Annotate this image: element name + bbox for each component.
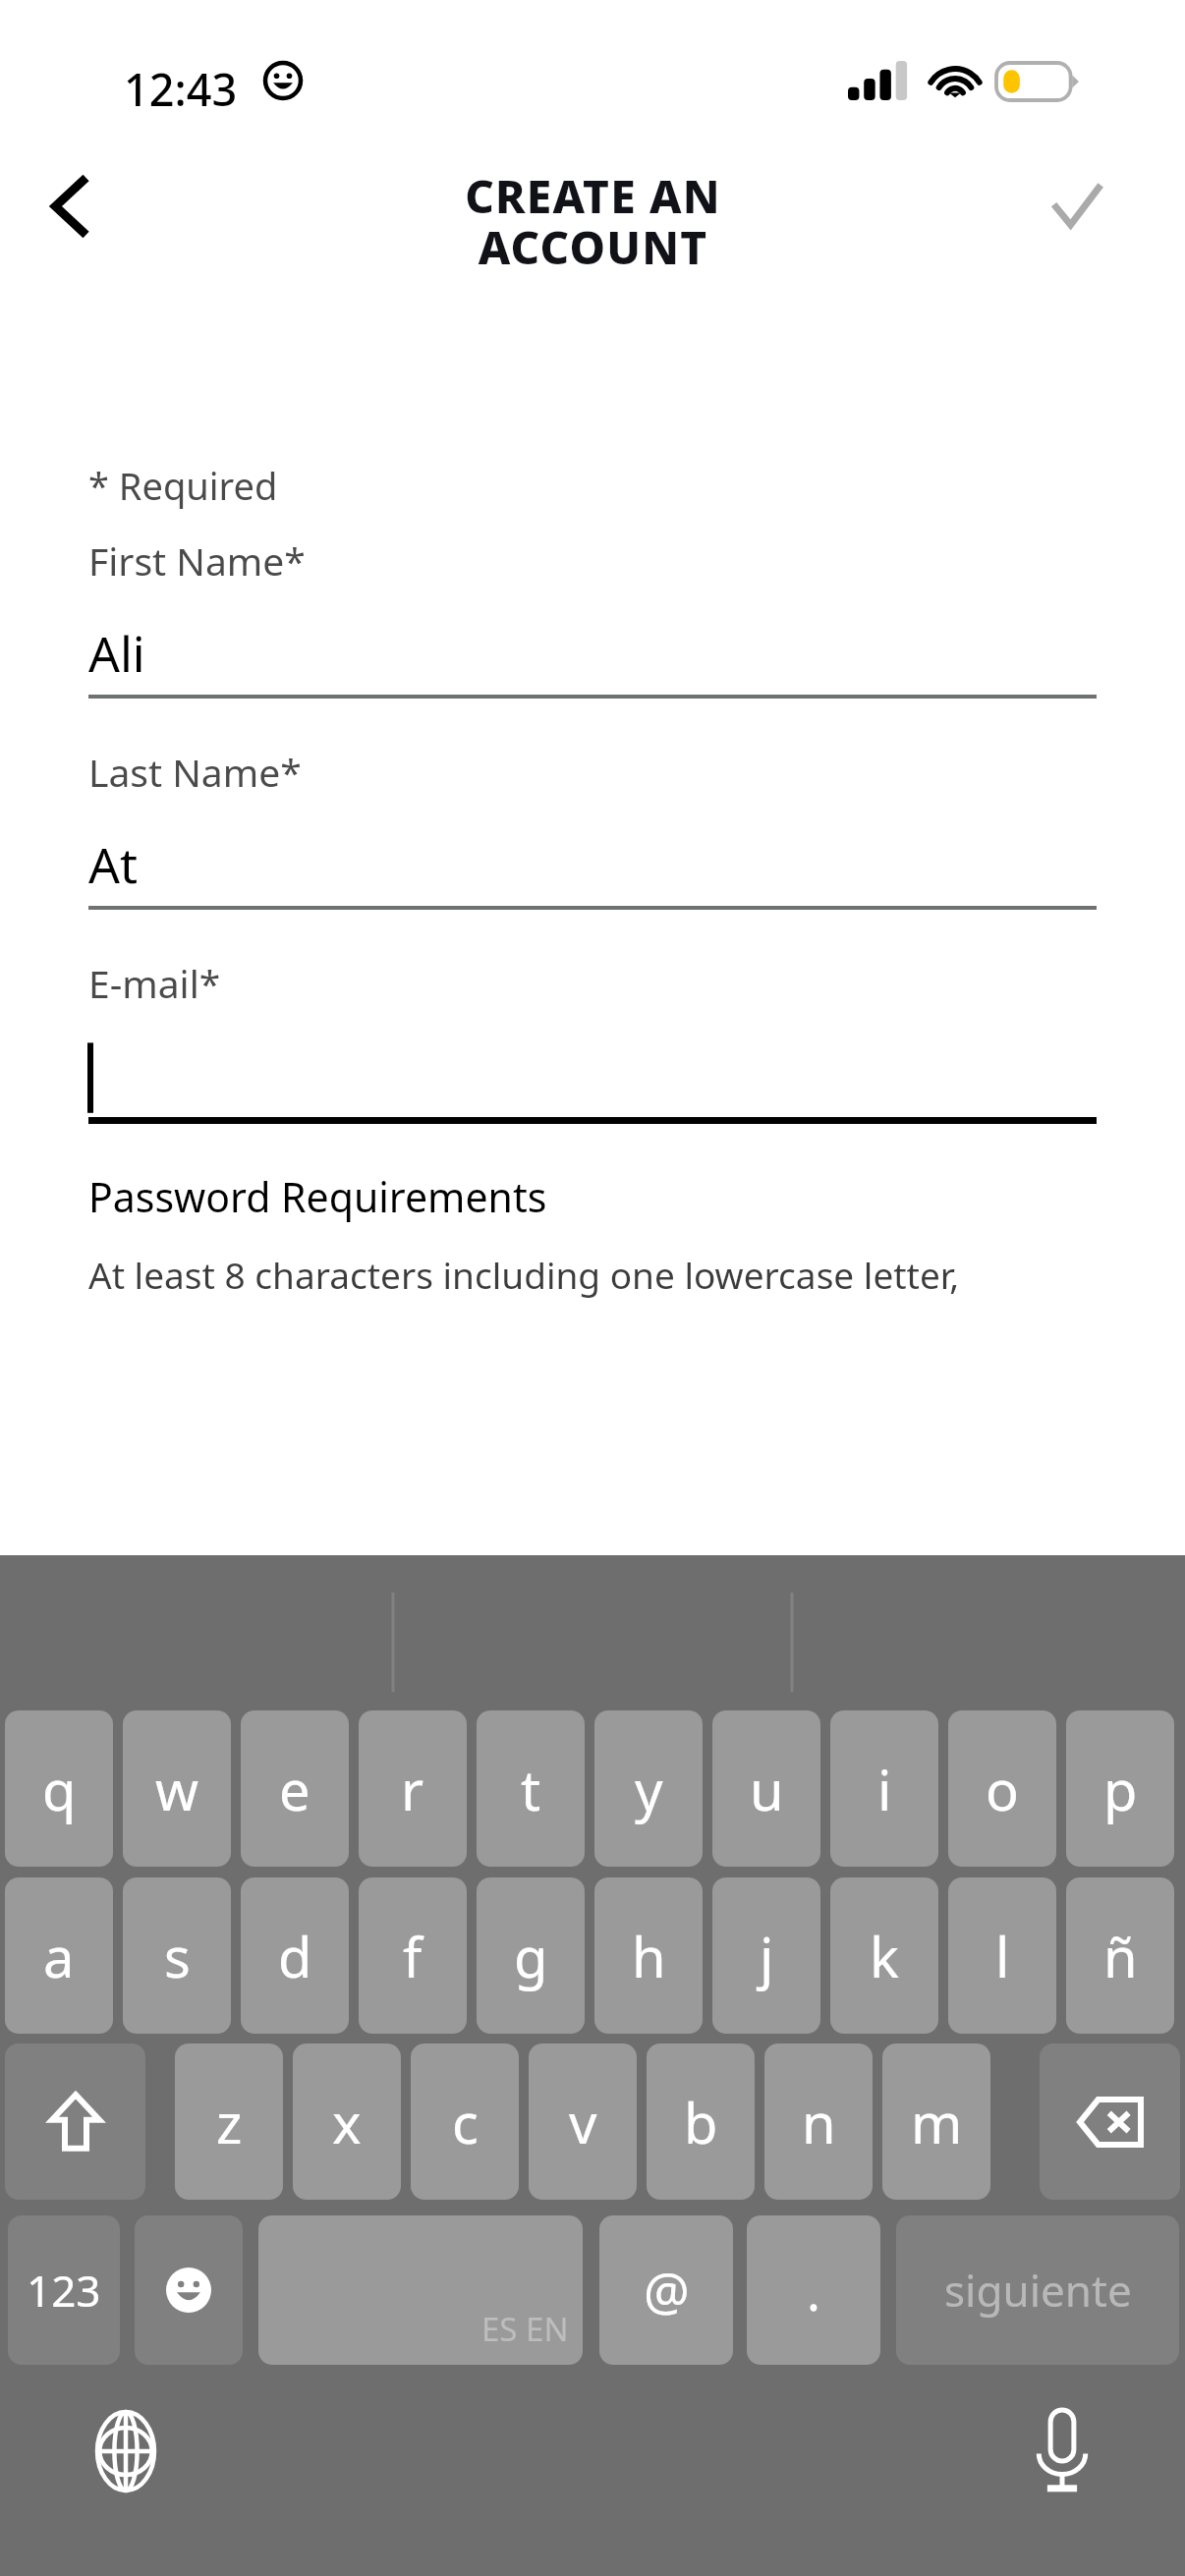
button[interactable]: 123 [8,2215,120,2365]
button[interactable]: Backspace [1040,2044,1180,2200]
staticText: Last Name* [88,746,302,798]
staticText: Password Requirements [88,1169,547,1224]
button[interactable]: Back [20,157,118,255]
button[interactable]: Ali [88,612,1097,695]
staticText: l [995,1919,1010,1993]
staticText: g [514,1919,548,1993]
staticText: Ali [88,620,145,687]
button[interactable]: c [411,2044,519,2200]
button[interactable]: n [764,2044,873,2200]
staticText: * Required [88,460,278,511]
staticText: At [88,831,138,898]
staticText: c [452,2085,479,2159]
staticText: v [569,2085,597,2159]
button[interactable]: Emoji [135,2215,243,2365]
button[interactable]: z [175,2044,283,2200]
button[interactable]: m [882,2044,990,2200]
staticText: r [401,1752,424,1826]
staticText: k [870,1919,899,1993]
button[interactable]: At [88,823,1097,906]
button[interactable]: r [359,1710,467,1867]
button[interactable]: Confirm [1028,157,1126,255]
staticText: m [911,2085,963,2159]
button[interactable]: Space [258,2215,583,2365]
button[interactable]: @ [599,2215,733,2365]
button[interactable]: a [5,1877,113,2034]
staticText: j [760,1919,774,1993]
staticText: siguiente [944,2261,1132,2320]
staticText: ñ [1103,1919,1138,1993]
button[interactable]: g [477,1877,585,2034]
staticText: i [877,1752,892,1826]
button[interactable]: s [123,1877,231,2034]
button[interactable]: p [1066,1710,1174,1867]
staticText: CREATE AN ACCOUNT [465,165,721,277]
button[interactable]: x [293,2044,401,2200]
staticText: p [1103,1752,1138,1826]
staticText: b [684,2085,718,2159]
staticText: q [42,1752,77,1826]
staticText: u [750,1752,784,1826]
button[interactable]: q [5,1710,113,1867]
button[interactable]: h [594,1877,703,2034]
button[interactable]: l [948,1877,1056,2034]
button[interactable]: f [359,1877,467,2034]
button[interactable]: t [477,1710,585,1867]
button[interactable]: siguiente [896,2215,1179,2365]
staticText: t [521,1752,541,1826]
staticText: d [278,1919,312,1993]
staticText: s [164,1919,191,1993]
staticText: n [802,2085,836,2159]
button[interactable]: w [123,1710,231,1867]
button[interactable]: o [948,1710,1056,1867]
button[interactable]: ñ [1066,1877,1174,2034]
staticText: At least 8 characters including one lowe… [88,1250,960,1299]
staticText: a [43,1919,75,1993]
button[interactable]: Change language [77,2402,175,2500]
staticText: ES EN [481,2307,569,2351]
staticText: y [635,1752,663,1826]
button[interactable]: u [712,1710,820,1867]
button[interactable]: b [647,2044,755,2200]
staticText: 12:43 [124,59,238,119]
staticText: z [216,2085,243,2159]
button[interactable]: j [712,1877,820,2034]
button[interactable]: k [830,1877,938,2034]
button[interactable]: . [747,2215,880,2365]
staticText: f [403,1919,423,1993]
button[interactable]: y [594,1710,703,1867]
staticText: e [279,1752,310,1826]
staticText: First Name* [88,534,306,587]
button[interactable]: Shift [5,2044,145,2200]
staticText: @ [644,2256,690,2325]
button[interactable]: e [241,1710,349,1867]
staticText: x [332,2085,362,2159]
button[interactable] [88,1035,1097,1117]
staticText: . [807,2256,820,2325]
button[interactable]: v [529,2044,637,2200]
staticText: w [155,1752,199,1826]
staticText: E-mail* [88,957,221,1009]
staticText: h [632,1919,666,1993]
button[interactable]: Voice input [1013,2402,1111,2500]
button[interactable]: i [830,1710,938,1867]
staticText: o [986,1752,1019,1826]
button[interactable]: d [241,1877,349,2034]
staticText: 123 [27,2261,101,2320]
